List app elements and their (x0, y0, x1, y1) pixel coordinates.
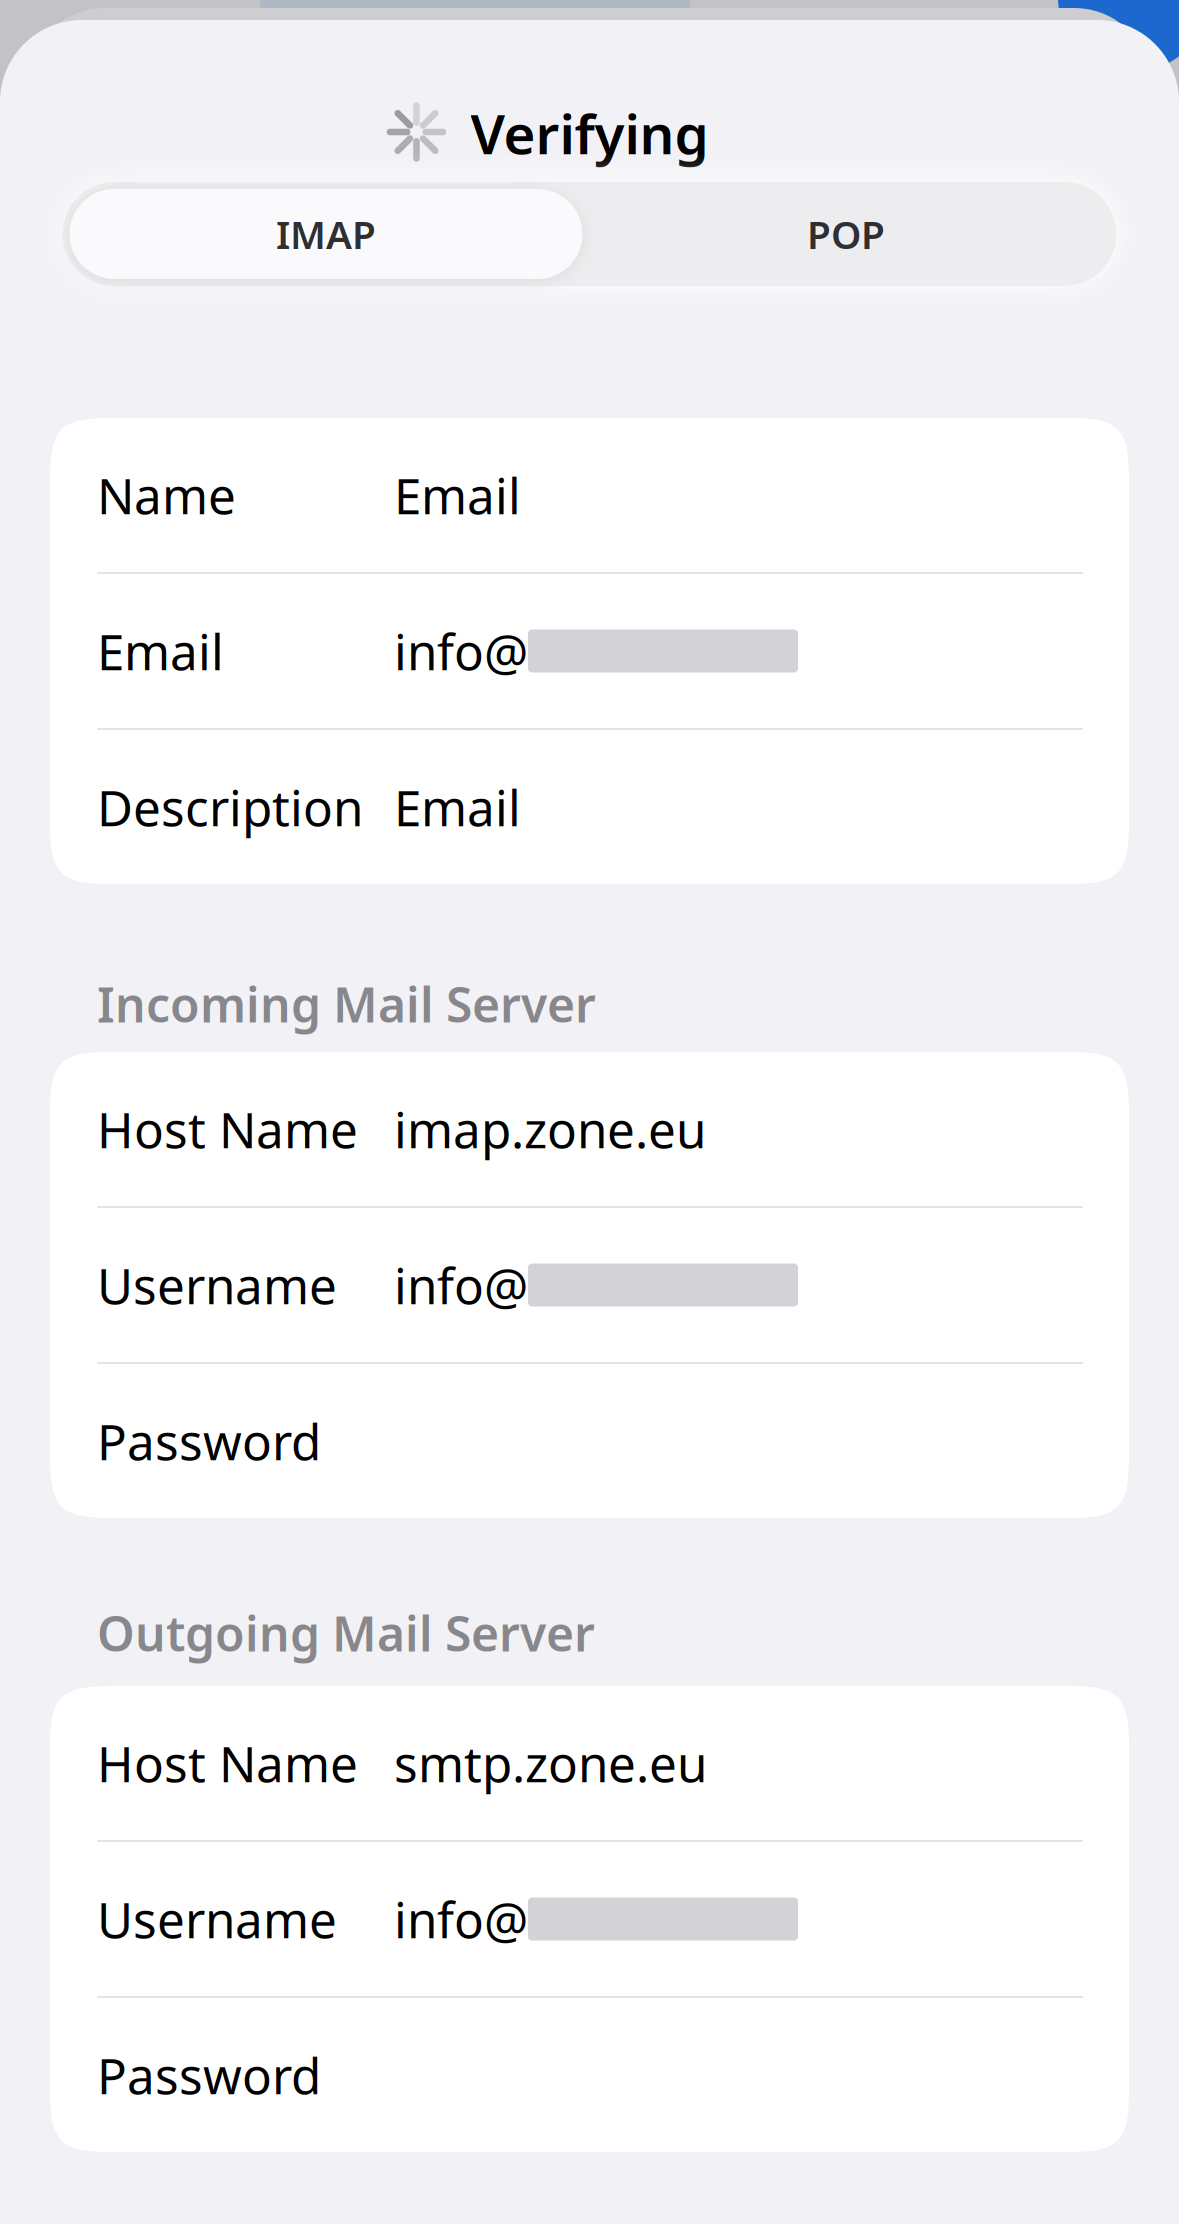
staticText: Username (97, 1886, 337, 1952)
staticText: POP (807, 208, 885, 260)
staticText: info@ (394, 618, 528, 684)
button[interactable]: Username (50, 1208, 1129, 1362)
button[interactable]: IMAP (69, 189, 582, 279)
button[interactable]: Password (50, 1364, 1129, 1518)
staticText: IMAP (276, 208, 376, 260)
staticText: smtp.zone.eu (394, 1730, 707, 1796)
button[interactable]: Name (50, 418, 1129, 572)
button[interactable]: Host Name (50, 1052, 1129, 1206)
staticText: Username (97, 1252, 337, 1318)
staticText: Incoming Mail Server (97, 972, 596, 1036)
staticText: Host Name (97, 1096, 358, 1162)
staticText: Password (97, 1408, 321, 1474)
button[interactable]: Description (50, 730, 1129, 884)
staticText: info@ (394, 1252, 528, 1318)
staticText: info@ (394, 1886, 528, 1952)
staticText: Name (97, 462, 236, 528)
button[interactable]: Password (50, 1998, 1129, 2152)
staticText: Outgoing Mail Server (97, 1601, 595, 1665)
staticText: Email (97, 618, 224, 684)
staticText: imap.zone.eu (394, 1096, 706, 1162)
staticText: Email (394, 462, 521, 528)
button[interactable]: Email (50, 574, 1129, 728)
button[interactable]: Username (50, 1842, 1129, 1996)
staticText: Host Name (97, 1730, 358, 1796)
staticText: Description (97, 774, 363, 840)
button[interactable]: POP (582, 189, 1109, 279)
staticText: Password (97, 2042, 321, 2108)
staticText: Email (394, 774, 521, 840)
staticText: Verifying (470, 97, 708, 169)
button[interactable]: Host Name (50, 1686, 1129, 1840)
